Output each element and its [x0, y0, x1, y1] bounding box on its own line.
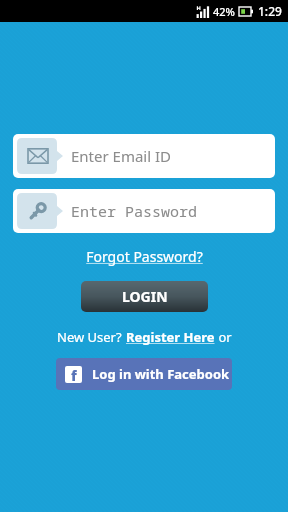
button[interactable]: Forgot Password?: [0, 247, 288, 266]
button[interactable]: Register Here: [126, 328, 215, 346]
staticText: Enter Email ID: [71, 146, 172, 166]
staticText: 42%: [213, 4, 235, 19]
button[interactable]: LOGIN: [81, 281, 208, 312]
staticText: Enter Password: [71, 201, 198, 221]
staticText: Forgot Password?: [86, 247, 203, 266]
staticText: LOGIN: [122, 287, 168, 306]
button[interactable]: Enter Password: [13, 189, 275, 233]
button[interactable]: f: [56, 358, 232, 390]
staticText: f: [71, 366, 77, 383]
button[interactable]: Enter Email ID: [13, 134, 275, 178]
staticText: Log in with Facebook: [92, 365, 230, 383]
staticText: or: [215, 328, 232, 346]
staticText: 1:29: [258, 3, 282, 19]
staticText: Register Here: [126, 328, 215, 346]
staticText: New User?: [57, 328, 126, 346]
